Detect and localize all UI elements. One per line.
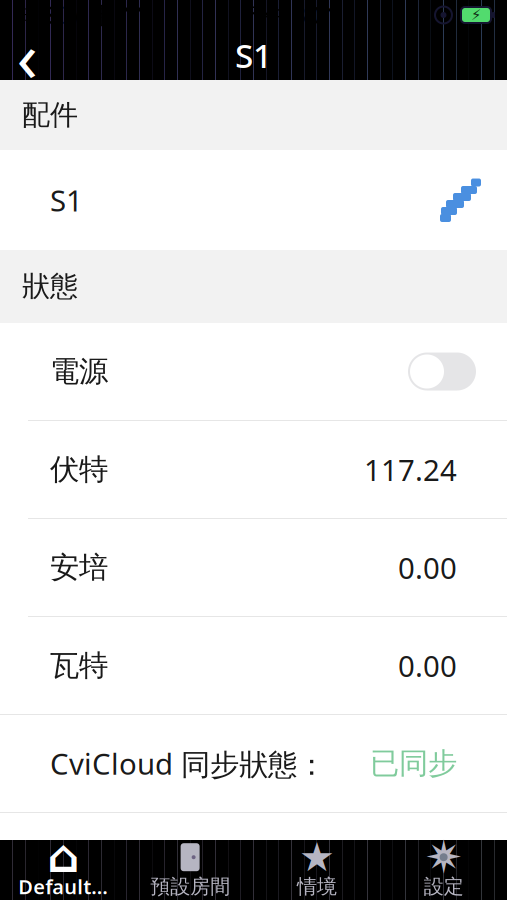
button[interactable]: Back: [0, 32, 44, 78]
staticText: 電源: [50, 353, 108, 389]
staticText: 狀態: [22, 269, 78, 304]
button[interactable]: S1: [0, 150, 507, 250]
staticText: 下午 3:01: [241, 0, 338, 30]
button[interactable]: ✷: [380, 840, 507, 900]
button[interactable]: CviCloud 同步狀態：: [0, 715, 507, 812]
staticText: ⌂: [47, 830, 79, 882]
staticText: S1: [50, 180, 83, 219]
staticText: 無 SIM 卡: [14, 0, 114, 30]
staticText: S1: [235, 33, 272, 77]
button[interactable]: ⌂: [0, 840, 127, 900]
staticText: ‹: [16, 9, 37, 101]
staticText: 安培: [50, 549, 108, 585]
staticText: 伏特: [50, 451, 108, 487]
button[interactable]: 伏特: [0, 421, 507, 518]
button[interactable]: ★: [253, 840, 380, 900]
staticText: 117.24: [364, 450, 457, 489]
button[interactable]: 電源: [0, 323, 507, 420]
staticText: 預設房間: [150, 874, 230, 899]
staticText: ★: [299, 834, 335, 880]
button[interactable]: 安培: [0, 519, 507, 616]
staticText: 0.00: [398, 646, 457, 685]
staticText: ✷: [425, 831, 463, 883]
staticText: 瓦特: [50, 647, 108, 683]
staticText: 情境: [297, 874, 337, 899]
staticText: 配件: [22, 98, 78, 132]
staticText: ⚡︎: [471, 7, 481, 23]
button[interactable]: 預設房間: [127, 840, 254, 900]
staticText: 已同步: [370, 745, 457, 781]
staticText: 0.00: [398, 548, 457, 587]
staticText: Default…: [18, 873, 108, 900]
button[interactable]: 瓦特: [0, 617, 507, 714]
staticText: 設定: [424, 874, 464, 899]
staticText: CviCloud 同步狀態：: [50, 744, 326, 783]
